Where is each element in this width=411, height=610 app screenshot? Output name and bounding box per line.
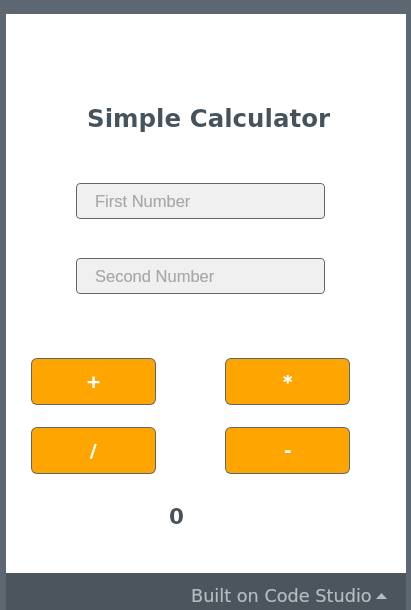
button[interactable]: Second Number — [76, 258, 325, 294]
staticText: / — [90, 440, 97, 461]
button[interactable]: Multiply — [225, 358, 350, 405]
staticText: Built on Code Studio — [191, 586, 372, 607]
staticText: - — [284, 440, 292, 461]
staticText: Simple Calculator — [87, 104, 331, 133]
staticText: 0 — [169, 504, 184, 529]
button[interactable]: Built on Code Studio — [185, 582, 393, 610]
staticText: + — [86, 371, 102, 392]
staticText: First Number — [95, 192, 191, 210]
button[interactable]: Subtract — [225, 427, 350, 474]
button[interactable]: Divide — [31, 427, 156, 474]
staticText: * — [283, 371, 293, 392]
staticText: Second Number — [95, 267, 215, 285]
button[interactable]: Add — [31, 358, 156, 405]
button[interactable]: First Number — [76, 183, 325, 219]
